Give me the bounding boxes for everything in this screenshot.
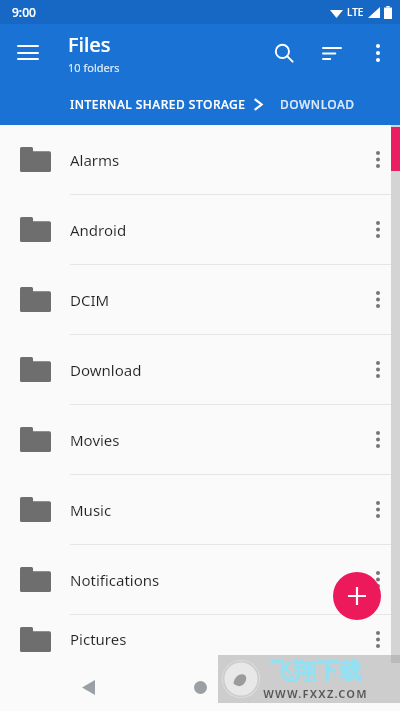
button[interactable]: Alarms [0,125,400,194]
staticText: Music [70,500,356,520]
button[interactable]: DCIM [0,265,400,334]
button[interactable]: DOWNLOAD [280,96,355,112]
button[interactable]: More options for Notifications [356,545,400,614]
staticText: 飞翔下载 [270,657,362,686]
button[interactable]: INTERNAL SHARED STORAGE [70,96,263,112]
button[interactable]: Open navigation drawer [0,24,56,82]
button[interactable]: More options for Music [356,475,400,544]
button[interactable]: More options for Android [356,195,400,264]
staticText: LTE [347,5,364,19]
button[interactable]: Search [260,24,308,82]
staticText: DCIM [70,290,356,310]
button[interactable]: Back [66,665,110,709]
button[interactable]: Pictures [0,615,400,663]
button[interactable]: Download [0,335,400,404]
button[interactable]: More options for DCIM [356,265,400,334]
staticText: Android [70,220,356,240]
staticText: DOWNLOAD [280,96,355,112]
button[interactable]: Sort [308,24,356,82]
staticText: WWW.FXXZ.COM [263,686,368,701]
button[interactable]: Home [178,665,222,709]
button[interactable]: Notifications [0,545,400,614]
staticText: Alarms [70,150,356,170]
button[interactable]: Movies [0,405,400,474]
staticText: Notifications [70,570,356,590]
staticText: Download [70,360,356,380]
button[interactable]: More options for Alarms [356,125,400,194]
staticText: 9:00 [12,4,36,20]
staticText: Pictures [70,629,356,649]
button[interactable]: Create new [333,572,381,620]
staticText: Movies [70,430,356,450]
button[interactable]: More options for Pictures [356,615,400,663]
button[interactable]: Android [0,195,400,264]
button[interactable]: More options for Download [356,335,400,404]
button[interactable]: More options for Movies [356,405,400,474]
button[interactable]: Music [0,475,400,544]
staticText: Files [68,31,111,58]
button[interactable]: More options [356,24,400,82]
staticText: INTERNAL SHARED STORAGE [70,96,246,112]
staticText: 10 folders [68,60,120,75]
